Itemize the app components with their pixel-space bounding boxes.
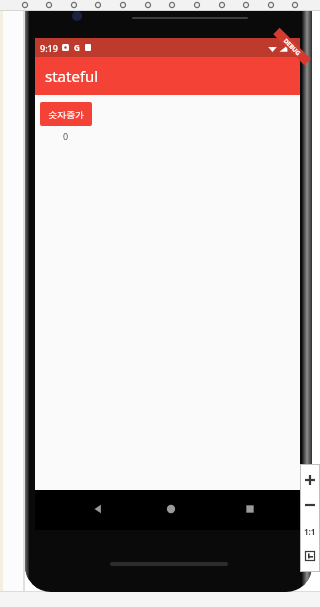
button[interactable]: 숫자증가 [40,102,92,126]
staticText: stateful [45,66,99,86]
staticText: 9:19 [40,42,58,54]
button[interactable]: Zoom in [301,471,319,489]
button[interactable]: 1:1 [301,522,319,540]
staticText: G [74,42,80,53]
button[interactable]: Recent apps [242,501,258,517]
button[interactable]: Zoom out [301,496,319,514]
button[interactable]: Fit to screen [301,547,319,565]
staticText: 0 [63,130,69,142]
staticText: DEBUG [282,37,302,57]
button[interactable]: Home [163,501,179,517]
staticText: 숫자증가 [48,109,84,120]
staticText: 1:1 [304,526,316,537]
button[interactable]: Back [90,501,106,517]
